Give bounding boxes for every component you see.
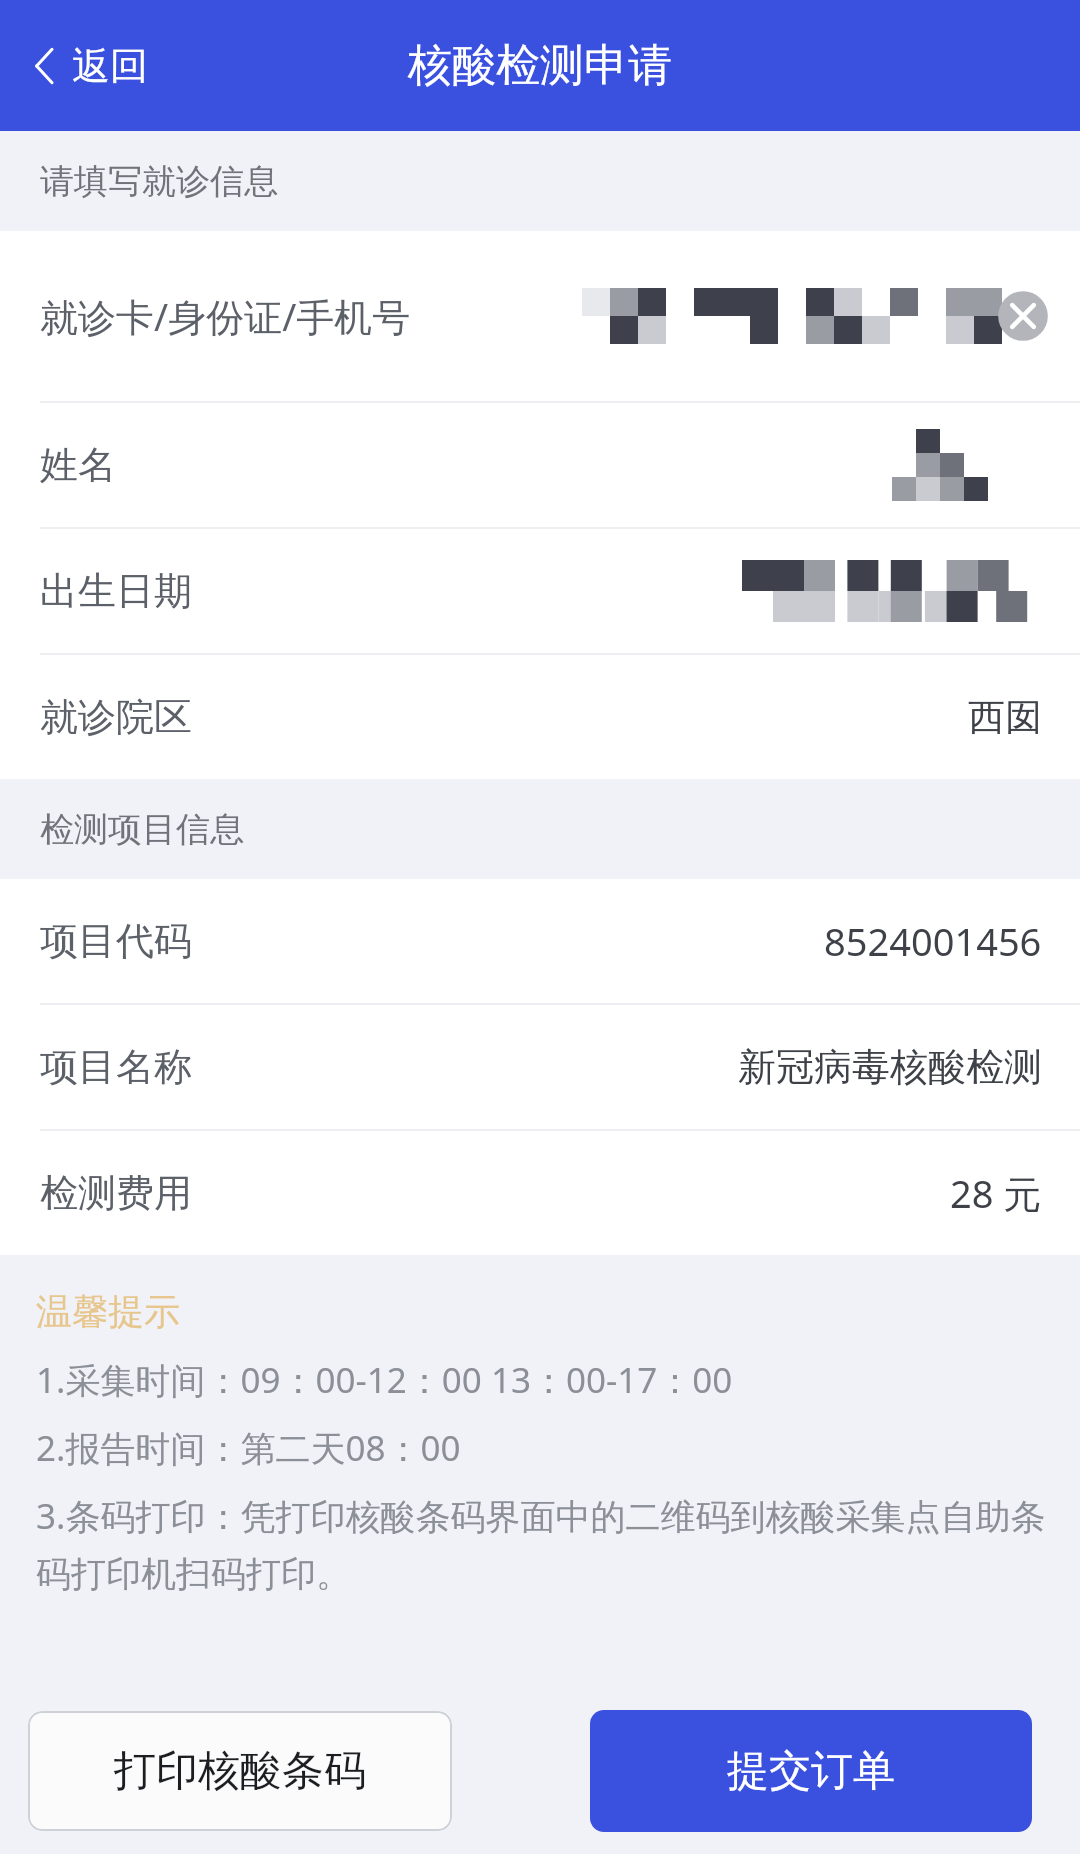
button[interactable]: 检测费用 xyxy=(0,1131,1080,1255)
button[interactable]: 项目名称 xyxy=(0,1005,1080,1129)
staticText: 28 元 xyxy=(950,1167,1042,1219)
staticText: 检测项目信息 xyxy=(40,808,244,851)
staticText: 提交订单 xyxy=(727,1745,895,1798)
staticText: 1.采集时间：09：00-12：00 13：00-17：00 xyxy=(36,1356,733,1404)
staticText: 项目代码 xyxy=(40,917,192,965)
staticText: 打印核酸条码 xyxy=(114,1745,366,1798)
button[interactable]: 就诊卡/身份证/手机号 xyxy=(0,231,1080,401)
staticText: 就诊卡/身份证/手机号 xyxy=(40,290,411,342)
button[interactable]: 打印核酸条码 xyxy=(28,1711,452,1831)
staticText: 2.报告时间：第二天08：00 xyxy=(36,1424,461,1472)
staticText: 新冠病毒核酸检测 xyxy=(738,1043,1042,1091)
button[interactable]: 提交订单 xyxy=(590,1710,1032,1832)
button[interactable]: 项目代码 xyxy=(0,879,1080,1003)
staticText: 出生日期 xyxy=(40,567,192,615)
button[interactable]: 返回 xyxy=(0,28,172,104)
button[interactable]: 清空 xyxy=(996,289,1050,343)
staticText: 就诊院区 xyxy=(40,693,192,741)
button[interactable]: 出生日期 xyxy=(0,529,1080,653)
staticText: 返回 xyxy=(72,42,148,90)
staticText: 3.条码打印：凭打印核酸条码界面中的二维码到核酸采集点自助条码打印机扫码打印。 xyxy=(36,1492,1050,1596)
button[interactable]: 姓名 xyxy=(0,403,1080,527)
staticText: 核酸检测申请 xyxy=(408,38,672,93)
staticText: 检测费用 xyxy=(40,1169,192,1217)
staticText: 温馨提示 xyxy=(36,1289,180,1334)
staticText: 项目名称 xyxy=(40,1043,192,1091)
staticText: 请填写就诊信息 xyxy=(40,160,278,203)
staticText: 西囡 xyxy=(968,694,1042,741)
staticText: 8524001456 xyxy=(824,915,1042,967)
button[interactable]: 就诊院区 xyxy=(0,655,1080,779)
staticText: 姓名 xyxy=(40,441,116,489)
